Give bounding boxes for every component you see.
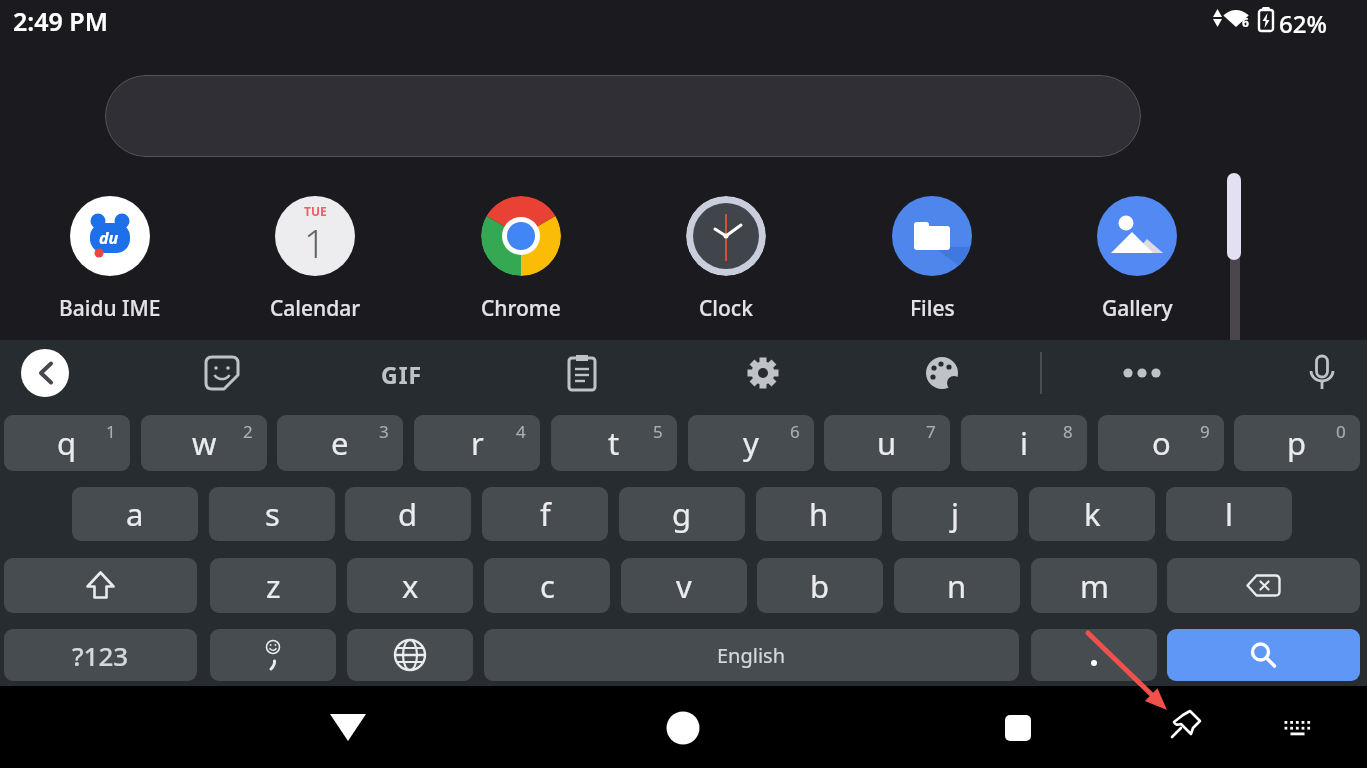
staticText: 62% — [1279, 7, 1327, 40]
staticText: c — [540, 565, 555, 607]
button[interactable]: m — [1031, 558, 1157, 613]
staticText: 2 — [243, 420, 253, 443]
button[interactable]: GIF — [372, 359, 432, 387]
button[interactable]: p — [1234, 415, 1360, 471]
button[interactable] — [686, 196, 766, 276]
staticText: p — [1287, 422, 1307, 464]
staticText: Baidu IME — [59, 294, 161, 322]
staticText: q — [57, 422, 77, 464]
button[interactable]: c — [484, 558, 610, 613]
staticText: w — [192, 422, 217, 464]
button[interactable]: b — [757, 558, 883, 613]
button[interactable] — [4, 558, 197, 613]
button[interactable] — [1167, 558, 1360, 613]
button[interactable]: q — [4, 415, 130, 471]
button[interactable]: w — [141, 415, 267, 471]
button[interactable] — [1097, 196, 1177, 276]
button[interactable] — [210, 629, 336, 681]
staticText: du — [99, 227, 119, 249]
button[interactable] — [1167, 629, 1360, 681]
staticText: u — [877, 422, 897, 464]
staticText: TUE — [304, 203, 327, 219]
button[interactable] — [655, 700, 711, 756]
staticText: j — [951, 493, 959, 535]
button[interactable]: h — [756, 487, 882, 541]
button[interactable] — [918, 349, 966, 397]
staticText: s — [265, 493, 280, 535]
staticText: i — [1020, 422, 1028, 464]
staticText: 6 — [790, 420, 800, 443]
button[interactable]: f — [482, 487, 608, 541]
staticText: 6 — [1242, 14, 1249, 30]
staticText: 8 — [1063, 420, 1073, 443]
button[interactable] — [1118, 349, 1166, 397]
staticText: x — [402, 565, 419, 607]
staticText: m — [1080, 565, 1109, 607]
button[interactable]: TUE — [275, 196, 355, 276]
staticText: ?123 — [72, 638, 129, 673]
button[interactable] — [21, 349, 69, 397]
staticText: o — [1152, 422, 1171, 464]
staticText: 9 — [1200, 420, 1210, 443]
staticText: d — [398, 493, 418, 535]
staticText: 1 — [106, 420, 116, 443]
staticText: h — [809, 493, 829, 535]
button[interactable]: y — [688, 415, 814, 471]
button[interactable] — [481, 196, 561, 276]
staticText: f — [540, 493, 551, 535]
staticText: 0 — [1336, 420, 1346, 443]
staticText: e — [331, 422, 349, 464]
button[interactable]: v — [621, 558, 747, 613]
staticText: Chrome — [481, 294, 561, 322]
button[interactable]: ?123 — [4, 629, 197, 681]
staticText: b — [810, 565, 830, 607]
button[interactable] — [990, 700, 1046, 756]
staticText: l — [1225, 493, 1233, 535]
button[interactable] — [558, 349, 606, 397]
button[interactable]: i — [961, 415, 1087, 471]
button[interactable]: o — [1098, 415, 1224, 471]
staticText: 7 — [926, 420, 936, 443]
button[interactable]: u — [824, 415, 950, 471]
button[interactable] — [105, 75, 1141, 157]
staticText: GIF — [381, 359, 423, 387]
button[interactable]: a — [72, 487, 198, 541]
staticText: n — [947, 565, 967, 607]
button[interactable]: g — [619, 487, 745, 541]
button[interactable] — [1159, 700, 1215, 756]
button[interactable] — [198, 349, 246, 397]
button[interactable] — [320, 700, 376, 756]
button[interactable]: e — [277, 415, 403, 471]
button[interactable] — [1031, 629, 1157, 681]
staticText: y — [743, 422, 759, 464]
button[interactable]: j — [892, 487, 1018, 541]
button[interactable]: l — [1166, 487, 1292, 541]
button[interactable]: k — [1029, 487, 1155, 541]
button[interactable] — [1298, 349, 1346, 397]
staticText: Clock — [699, 294, 753, 322]
button[interactable]: x — [347, 558, 473, 613]
staticText: v — [676, 565, 692, 607]
button[interactable]: z — [210, 558, 336, 613]
button[interactable] — [347, 629, 473, 681]
staticText: 1 — [304, 217, 326, 269]
button[interactable] — [892, 196, 972, 276]
staticText: r — [471, 422, 484, 464]
button[interactable]: r — [414, 415, 540, 471]
button[interactable] — [1269, 700, 1325, 756]
staticText: Gallery — [1102, 294, 1173, 322]
staticText: Files — [910, 294, 955, 322]
button[interactable]: n — [894, 558, 1020, 613]
staticText: Calendar — [270, 294, 361, 322]
button[interactable]: t — [551, 415, 677, 471]
staticText: 4 — [516, 420, 526, 443]
staticText: t — [608, 422, 620, 464]
button[interactable]: d — [345, 487, 471, 541]
staticText: English — [717, 642, 786, 669]
button[interactable]: du — [70, 196, 150, 276]
button[interactable]: English — [484, 629, 1019, 681]
button[interactable] — [739, 349, 787, 397]
staticText: a — [126, 493, 144, 535]
button[interactable]: s — [209, 487, 335, 541]
staticText: g — [672, 493, 692, 535]
